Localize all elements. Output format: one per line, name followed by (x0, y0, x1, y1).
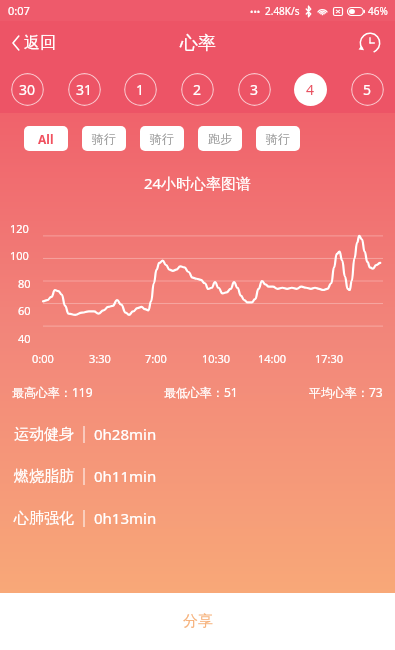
button[interactable]: History (355, 28, 385, 58)
staticText: 燃烧脂肪 (14, 467, 74, 486)
staticText: 最低心率：51 (164, 384, 238, 400)
button[interactable]: 4 (294, 73, 327, 106)
staticText: 0:07 (8, 3, 30, 18)
button[interactable]: 2 (181, 73, 214, 106)
staticText: 120 (10, 221, 29, 236)
staticText: ••• (250, 5, 261, 17)
staticText: 平均心率：73 (309, 384, 383, 400)
button[interactable]: 跑步 (198, 126, 242, 151)
button[interactable]: 1 (124, 73, 157, 106)
staticText: 跑步 (208, 131, 232, 146)
staticText: 0h28min (94, 424, 157, 444)
staticText: 骑行 (266, 131, 290, 146)
staticText: 4 (306, 80, 315, 99)
staticText: 骑行 (150, 131, 174, 146)
button[interactable]: 分享 (0, 593, 395, 650)
button[interactable]: 5 (351, 73, 384, 106)
staticText: 30 (19, 80, 36, 99)
staticText: 5 (363, 80, 372, 99)
staticText: 60 (18, 303, 31, 318)
button[interactable]: 燃烧脂肪 (0, 466, 395, 486)
button[interactable]: 骑行 (140, 126, 184, 151)
staticText: 心肺强化 (14, 509, 74, 528)
button[interactable]: 31 (68, 73, 101, 106)
staticText: 心率 (180, 32, 216, 55)
button[interactable]: 30 (11, 73, 44, 106)
button[interactable]: 心肺强化 (0, 508, 395, 528)
staticText: 返回 (24, 33, 56, 53)
button[interactable]: 运动健身 (0, 424, 395, 444)
staticText: 2.48K/s (265, 4, 300, 18)
staticText: 0:00 (32, 351, 54, 366)
staticText: 3 (250, 80, 259, 99)
button[interactable]: All (24, 126, 68, 151)
staticText: 最高心率：119 (12, 384, 93, 400)
staticText: 40 (18, 331, 31, 346)
staticText: 2 (193, 80, 202, 99)
staticText: 0h13min (94, 508, 157, 528)
button[interactable]: 骑行 (82, 126, 126, 151)
staticText: 7:00 (145, 351, 167, 366)
button[interactable]: 返回 (8, 28, 60, 58)
staticText: 骑行 (92, 131, 116, 146)
staticText: 运动健身 (14, 425, 74, 444)
staticText: 10:30 (202, 351, 231, 366)
staticText: All (38, 131, 54, 147)
staticText: 3:30 (89, 351, 111, 366)
staticText: 31 (76, 80, 93, 99)
staticText: 1 (136, 80, 145, 99)
staticText: 46% (368, 4, 388, 18)
staticText: 24小时心率图谱 (0, 173, 395, 193)
button[interactable]: 骑行 (256, 126, 300, 151)
staticText: 14:00 (258, 351, 287, 366)
staticText: 分享 (183, 612, 213, 631)
staticText: 17:30 (315, 351, 344, 366)
button[interactable]: 3 (238, 73, 271, 106)
staticText: 0h11min (94, 466, 157, 486)
staticText: 100 (10, 248, 29, 263)
staticText: 80 (18, 276, 31, 291)
